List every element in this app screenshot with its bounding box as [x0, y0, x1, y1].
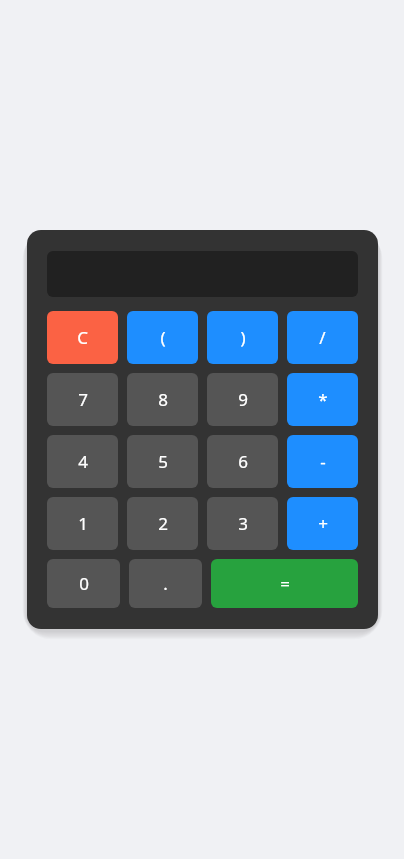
- staticText: /: [319, 326, 326, 349]
- staticText: 2: [158, 512, 168, 535]
- staticText: 1: [78, 512, 88, 535]
- staticText: 4: [78, 450, 88, 473]
- button[interactable]: (: [127, 311, 198, 364]
- staticText: (: [160, 326, 166, 349]
- staticText: *: [318, 388, 328, 411]
- button[interactable]: 2: [127, 497, 198, 550]
- staticText: 6: [238, 450, 248, 473]
- button[interactable]: C: [47, 311, 118, 364]
- staticText: C: [77, 326, 88, 349]
- staticText: -: [320, 450, 326, 473]
- button[interactable]: *: [287, 373, 358, 426]
- button[interactable]: 6: [207, 435, 278, 488]
- button[interactable]: =: [211, 559, 358, 608]
- staticText: 7: [78, 388, 88, 411]
- button[interactable]: .: [129, 559, 202, 608]
- button[interactable]: 4: [47, 435, 118, 488]
- button[interactable]: 9: [207, 373, 278, 426]
- button[interactable]: 0: [47, 559, 120, 608]
- staticText: +: [318, 512, 328, 535]
- button[interactable]: +: [287, 497, 358, 550]
- staticText: .: [163, 572, 168, 595]
- staticText: ): [240, 326, 246, 349]
- button[interactable]: ): [207, 311, 278, 364]
- staticText: 9: [238, 388, 248, 411]
- button[interactable]: -: [287, 435, 358, 488]
- button[interactable]: /: [287, 311, 358, 364]
- button[interactable]: 7: [47, 373, 118, 426]
- button[interactable]: 1: [47, 497, 118, 550]
- staticText: 8: [158, 388, 168, 411]
- staticText: 0: [79, 572, 89, 595]
- button[interactable]: 8: [127, 373, 198, 426]
- button[interactable]: 3: [207, 497, 278, 550]
- staticText: 5: [158, 450, 168, 473]
- button[interactable]: 5: [127, 435, 198, 488]
- staticText: 3: [238, 512, 248, 535]
- staticText: =: [280, 572, 290, 595]
